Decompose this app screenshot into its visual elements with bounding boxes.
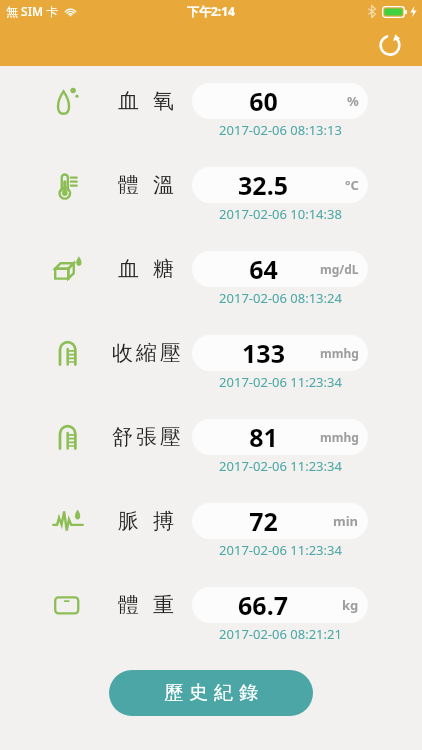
staticText: 歷	[164, 681, 183, 705]
staticText: 體	[118, 592, 139, 618]
staticText: 壓	[160, 424, 181, 450]
staticText: min	[333, 512, 359, 530]
button[interactable]: 60	[192, 83, 368, 119]
staticText: 錄	[239, 681, 258, 705]
staticText: 壓	[160, 340, 181, 366]
staticText: 搏	[153, 508, 174, 534]
button[interactable]: 81	[192, 419, 368, 455]
button[interactable]: 133	[192, 335, 368, 371]
staticText: 72	[249, 504, 278, 538]
staticText: 血	[118, 88, 139, 114]
staticText: mg/dL	[320, 261, 359, 277]
staticText: 脈	[118, 508, 139, 534]
button[interactable]: 72	[192, 503, 368, 539]
staticText: 2017-02-06 10:14:38	[219, 205, 342, 223]
staticText: 重	[153, 592, 174, 618]
button[interactable]: 歷	[109, 670, 313, 716]
staticText: kg	[342, 596, 359, 614]
staticText: 2017-02-06 11:23:34	[219, 373, 342, 391]
staticText: 66.7	[238, 588, 288, 622]
staticText: °C	[345, 176, 359, 194]
staticText: 血	[118, 256, 139, 282]
staticText: 糖	[153, 256, 174, 282]
staticText: 32.5	[238, 168, 288, 202]
button[interactable]: 32.5	[192, 167, 368, 203]
button[interactable]: Refresh	[368, 22, 412, 66]
staticText: 81	[249, 420, 278, 454]
button[interactable]: 64	[192, 251, 368, 287]
staticText: 史	[189, 681, 208, 705]
staticText: 縮	[136, 340, 157, 366]
staticText: 2017-02-06 11:23:34	[219, 541, 342, 559]
staticText: 體	[118, 172, 139, 198]
staticText: 2017-02-06 08:13:24	[219, 289, 342, 307]
button[interactable]: 66.7	[192, 587, 368, 623]
staticText: mmhg	[320, 429, 359, 445]
staticText: 收	[112, 340, 133, 366]
staticText: %	[347, 92, 359, 110]
staticText: 2017-02-06 11:23:34	[219, 457, 342, 475]
staticText: 氧	[153, 88, 174, 114]
staticText: 舒	[112, 424, 133, 450]
staticText: mmhg	[320, 345, 359, 361]
staticText: 溫	[153, 172, 174, 198]
staticText: 60	[249, 84, 278, 118]
staticText: 下午2:14	[187, 3, 235, 19]
staticText: 張	[136, 424, 157, 450]
staticText: 133	[242, 336, 285, 370]
staticText: 64	[249, 252, 278, 286]
staticText: 2017-02-06 08:13:13	[219, 121, 342, 139]
staticText: 2017-02-06 08:21:21	[219, 625, 342, 643]
staticText: 無 SIM 卡	[6, 3, 59, 19]
staticText: 紀	[214, 681, 233, 705]
